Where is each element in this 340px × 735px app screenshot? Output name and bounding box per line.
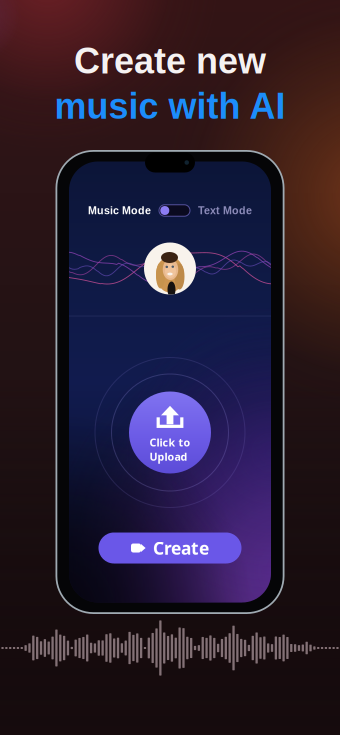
staticText: music with AI xyxy=(54,86,285,126)
button[interactable]: Click to upload xyxy=(94,356,246,508)
staticText: Text Mode xyxy=(198,204,252,216)
button[interactable]: Switch between music and text mode xyxy=(159,204,190,216)
staticText: Music Mode xyxy=(88,204,151,216)
staticText: Create xyxy=(153,536,209,559)
button[interactable]: Create xyxy=(98,532,241,563)
staticText: Create new xyxy=(74,41,266,81)
staticText: Click to Upload xyxy=(149,435,190,464)
